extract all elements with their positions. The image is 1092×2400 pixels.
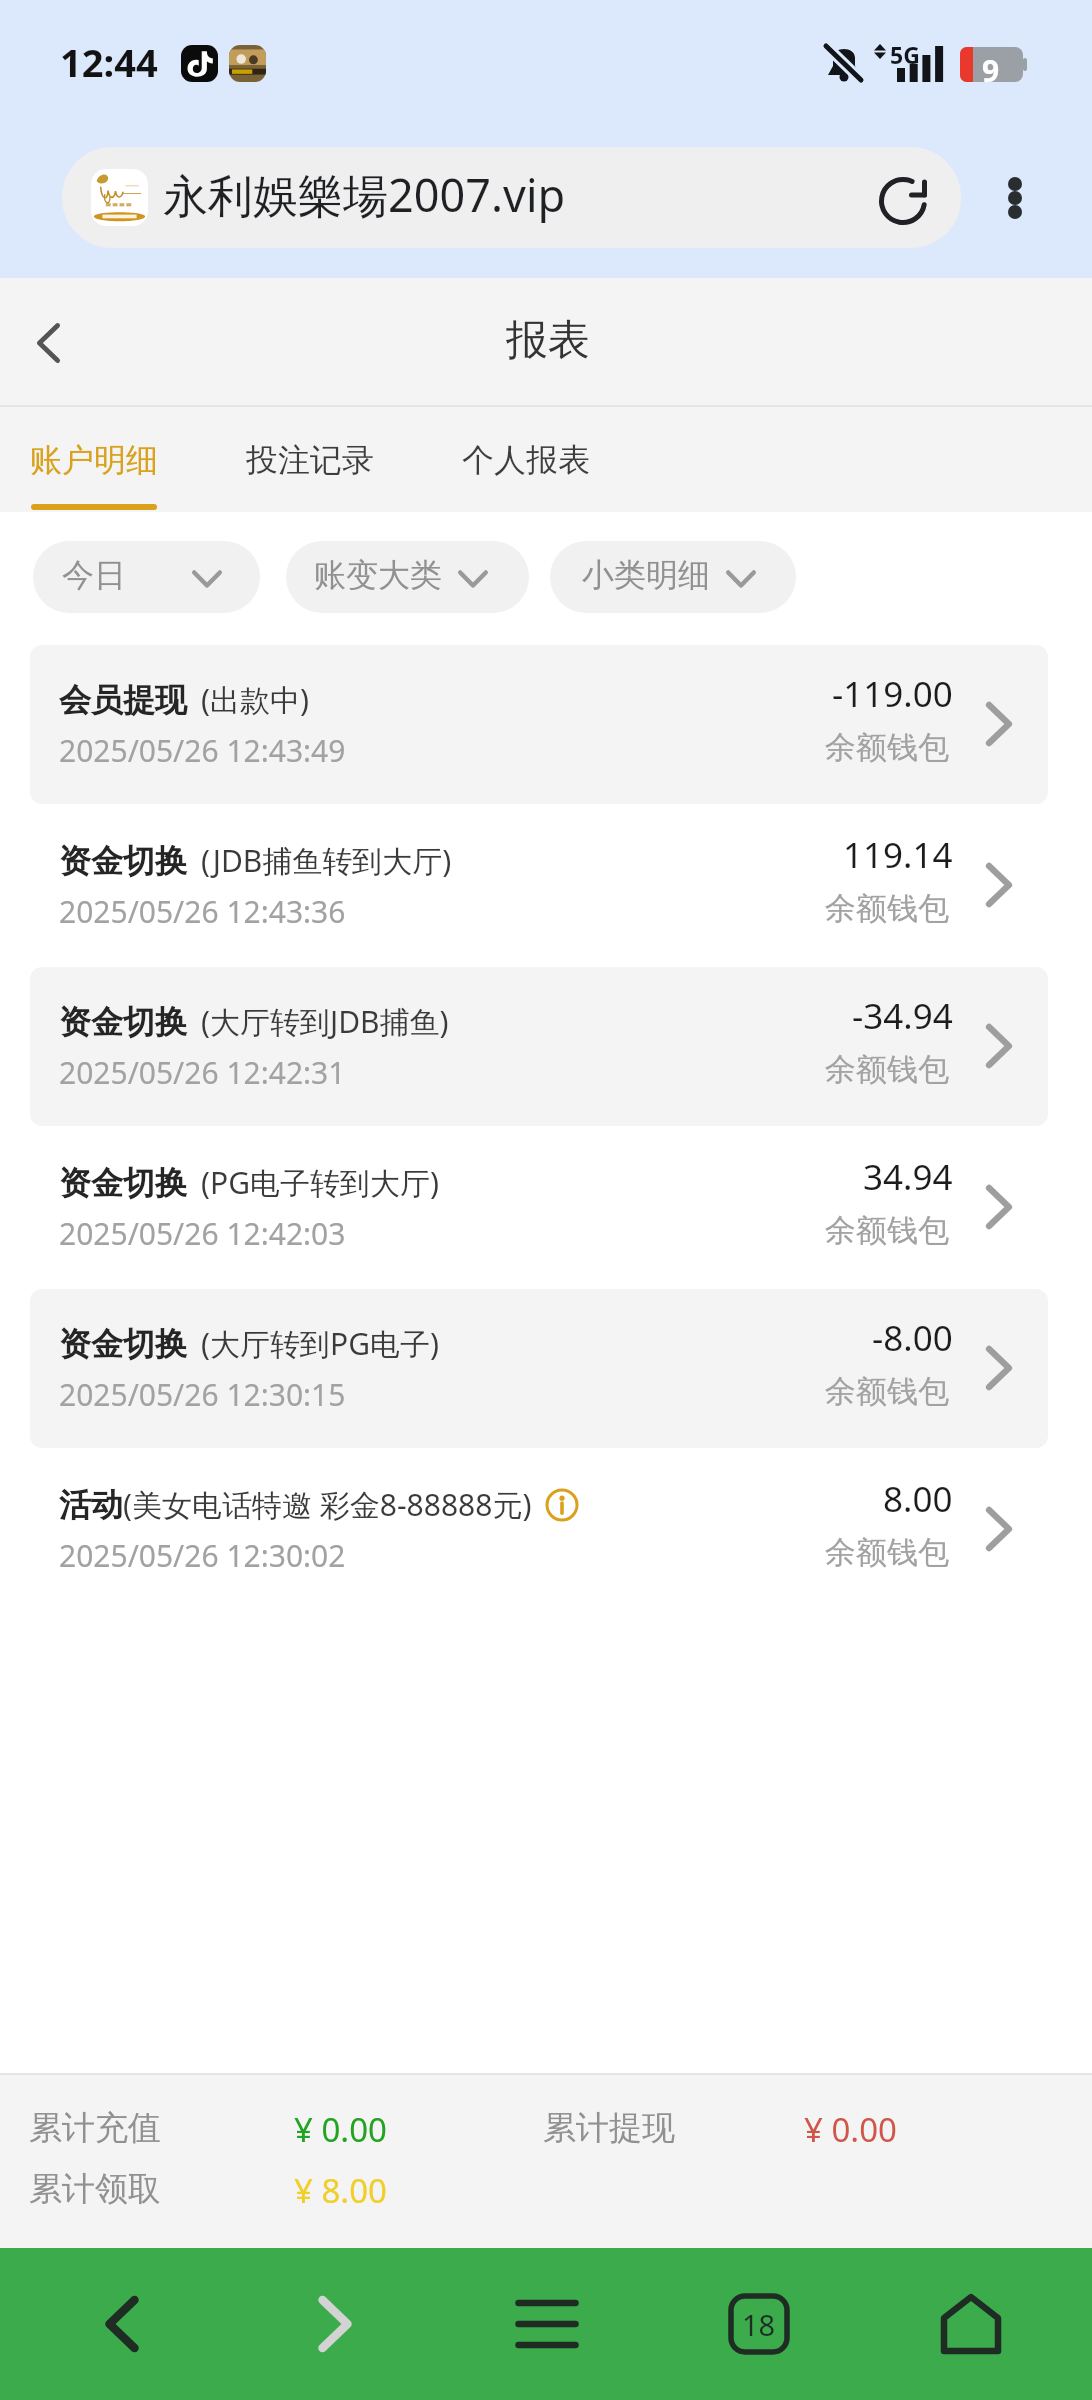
button[interactable]: 活动 bbox=[0, 1448, 1092, 1609]
staticText: 5G bbox=[890, 39, 920, 70]
button[interactable]: 资金切换 bbox=[0, 1126, 1092, 1287]
button[interactable]: Tabs, 18 open bbox=[653, 2248, 865, 2400]
staticText: -119.00 bbox=[832, 670, 953, 718]
staticText: 34.94 bbox=[863, 1153, 953, 1201]
button[interactable]: 小类明细 bbox=[550, 541, 796, 613]
button[interactable]: Forward bbox=[228, 2248, 441, 2400]
button[interactable]: Home bbox=[865, 2248, 1077, 2400]
staticText: ¥ 8.00 bbox=[294, 2168, 387, 2213]
staticText: 个人报表 bbox=[462, 440, 590, 480]
staticText: 会员提现 bbox=[59, 680, 187, 720]
staticText: 12:44 bbox=[60, 36, 158, 88]
staticText: 余额钱包 bbox=[825, 1050, 949, 1089]
button[interactable]: 永利娛樂場2007.vip bbox=[62, 147, 961, 248]
button[interactable]: 个人报表 bbox=[448, 407, 608, 512]
staticText: 资金切换 bbox=[59, 1324, 187, 1364]
staticText: 余额钱包 bbox=[825, 1533, 949, 1572]
button[interactable]: 资金切换 bbox=[0, 804, 1092, 965]
button[interactable]: 今日 bbox=[33, 541, 260, 613]
staticText: 2025/05/26 12:42:31 bbox=[59, 1052, 346, 1093]
staticText: 9 bbox=[982, 50, 1000, 91]
staticText: 余额钱包 bbox=[825, 1372, 949, 1411]
staticText: 今日 bbox=[62, 555, 126, 595]
button[interactable]: Back bbox=[0, 278, 100, 407]
staticText: 资金切换 bbox=[59, 1002, 187, 1042]
staticText: (JDB捕鱼转到大厅) bbox=[201, 840, 452, 881]
staticText: 8.00 bbox=[883, 1475, 953, 1523]
button[interactable]: Back bbox=[15, 2248, 228, 2400]
staticText: (出款中) bbox=[201, 679, 309, 720]
staticText: 18 bbox=[742, 2305, 776, 2344]
staticText: 累计提现 bbox=[543, 2107, 675, 2149]
button[interactable]: 会员提现 bbox=[0, 643, 1092, 804]
staticText: ¥ 0.00 bbox=[294, 2107, 387, 2152]
staticText: 累计充值 bbox=[29, 2107, 161, 2149]
staticText: 活动 bbox=[59, 1485, 123, 1525]
staticText: 2025/05/26 12:43:49 bbox=[59, 730, 346, 771]
staticText: 资金切换 bbox=[59, 1163, 187, 1203]
staticText: (大厅转到JDB捕鱼) bbox=[201, 1001, 449, 1042]
button[interactable]: 资金切换 bbox=[0, 965, 1092, 1126]
staticText: 账变大类 bbox=[314, 555, 442, 595]
staticText: 119.14 bbox=[843, 831, 953, 879]
staticText: 投注记录 bbox=[246, 440, 374, 480]
button[interactable]: Reload page bbox=[865, 163, 941, 239]
button[interactable]: 账户明细 bbox=[16, 407, 216, 512]
staticText: (美女电话特邀 彩金8-88888元) bbox=[123, 1484, 532, 1525]
staticText: (大厅转到PG电子) bbox=[201, 1323, 439, 1364]
staticText: 2025/05/26 12:42:03 bbox=[59, 1213, 346, 1254]
staticText: 余额钱包 bbox=[825, 1211, 949, 1250]
staticText: -34.94 bbox=[852, 992, 953, 1040]
staticText: 2025/05/26 12:43:36 bbox=[59, 891, 346, 932]
staticText: ¥ 0.00 bbox=[804, 2107, 897, 2152]
staticText: -8.00 bbox=[872, 1314, 953, 1362]
button[interactable]: 投注记录 bbox=[232, 407, 432, 512]
button[interactable]: Menu bbox=[441, 2248, 653, 2400]
button[interactable]: More options bbox=[975, 147, 1055, 248]
staticText: 小类明细 bbox=[582, 555, 710, 595]
staticText: 资金切换 bbox=[59, 841, 187, 881]
staticText: 累计领取 bbox=[29, 2168, 161, 2210]
button[interactable]: 账变大类 bbox=[286, 541, 529, 613]
staticText: 永利娛樂場2007.vip bbox=[163, 164, 566, 225]
staticText: 报表 bbox=[506, 314, 590, 367]
staticText: 账户明细 bbox=[30, 440, 158, 480]
staticText: 2025/05/26 12:30:15 bbox=[59, 1374, 346, 1415]
staticText: 2025/05/26 12:30:02 bbox=[59, 1535, 346, 1576]
staticText: 余额钱包 bbox=[825, 728, 949, 767]
staticText: 余额钱包 bbox=[825, 889, 949, 928]
staticText: (PG电子转到大厅) bbox=[201, 1162, 439, 1203]
button[interactable]: 资金切换 bbox=[0, 1287, 1092, 1448]
